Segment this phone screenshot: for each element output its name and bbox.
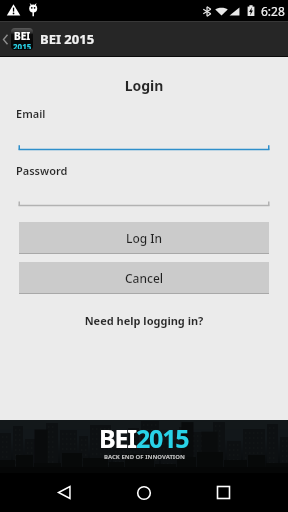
button[interactable]: Home — [124, 473, 164, 512]
staticText: BEI 2015 — [40, 30, 95, 48]
staticText: 2015 — [136, 421, 189, 455]
staticText: Need help logging in? — [0, 313, 288, 328]
staticText: 6:28 — [261, 3, 285, 19]
staticText: BEI — [99, 421, 136, 455]
staticText: Log In — [126, 230, 163, 246]
staticText: Password — [16, 163, 68, 178]
button[interactable]: Back — [44, 473, 84, 512]
button[interactable]: Recent apps — [203, 473, 243, 512]
button[interactable]: Password input — [18, 178, 270, 208]
button[interactable]: Cancel — [19, 262, 269, 293]
button[interactable]: Log In — [19, 222, 269, 253]
staticText: BACK END OF INNOVATION — [104, 453, 185, 461]
staticText: 2015 — [13, 41, 32, 49]
staticText: Login — [0, 76, 288, 95]
button[interactable]: Navigate up — [0, 28, 36, 50]
button[interactable]: Need help logging in? — [0, 313, 288, 328]
staticText: Cancel — [125, 270, 164, 286]
staticText: BEI — [14, 29, 31, 43]
staticText: Email — [16, 106, 46, 121]
button[interactable]: Email input — [18, 122, 270, 152]
